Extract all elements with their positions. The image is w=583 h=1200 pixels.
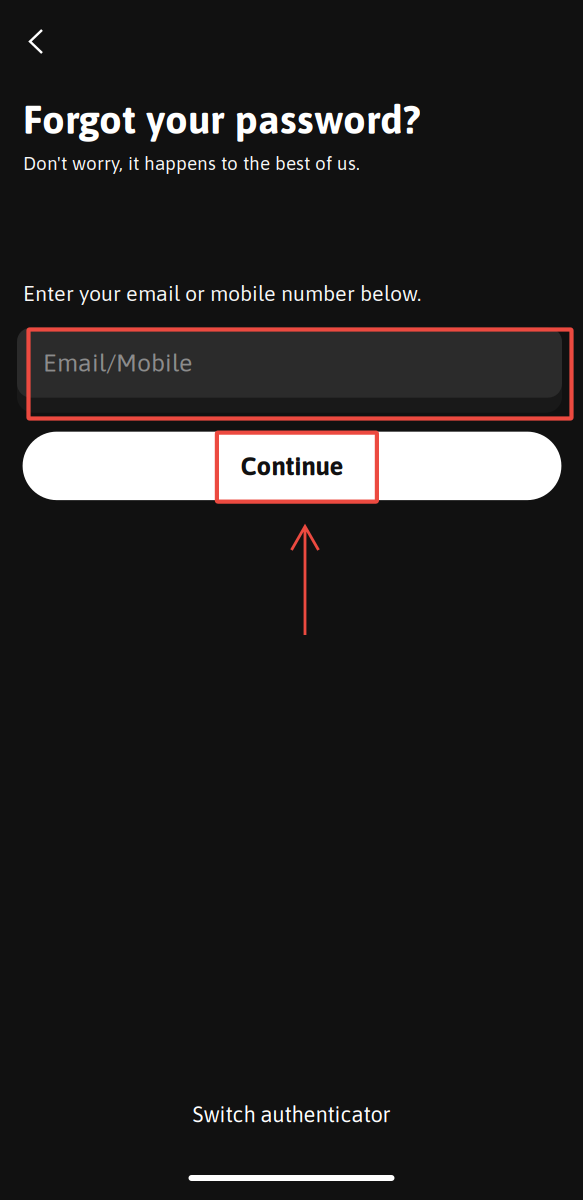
- staticText: Switch authenticator: [192, 1102, 390, 1127]
- staticText: Email/Mobile: [43, 348, 192, 377]
- button[interactable]: Back: [0, 0, 67, 68]
- staticText: Don't worry, it happens to the best of u…: [23, 152, 360, 174]
- staticText: Forgot your password?: [23, 96, 421, 142]
- button[interactable]: Continue: [23, 432, 561, 500]
- staticText: Enter your email or mobile number below.: [23, 281, 421, 306]
- button[interactable]: Switch authenticator: [0, 1092, 583, 1137]
- staticText: Continue: [240, 451, 343, 481]
